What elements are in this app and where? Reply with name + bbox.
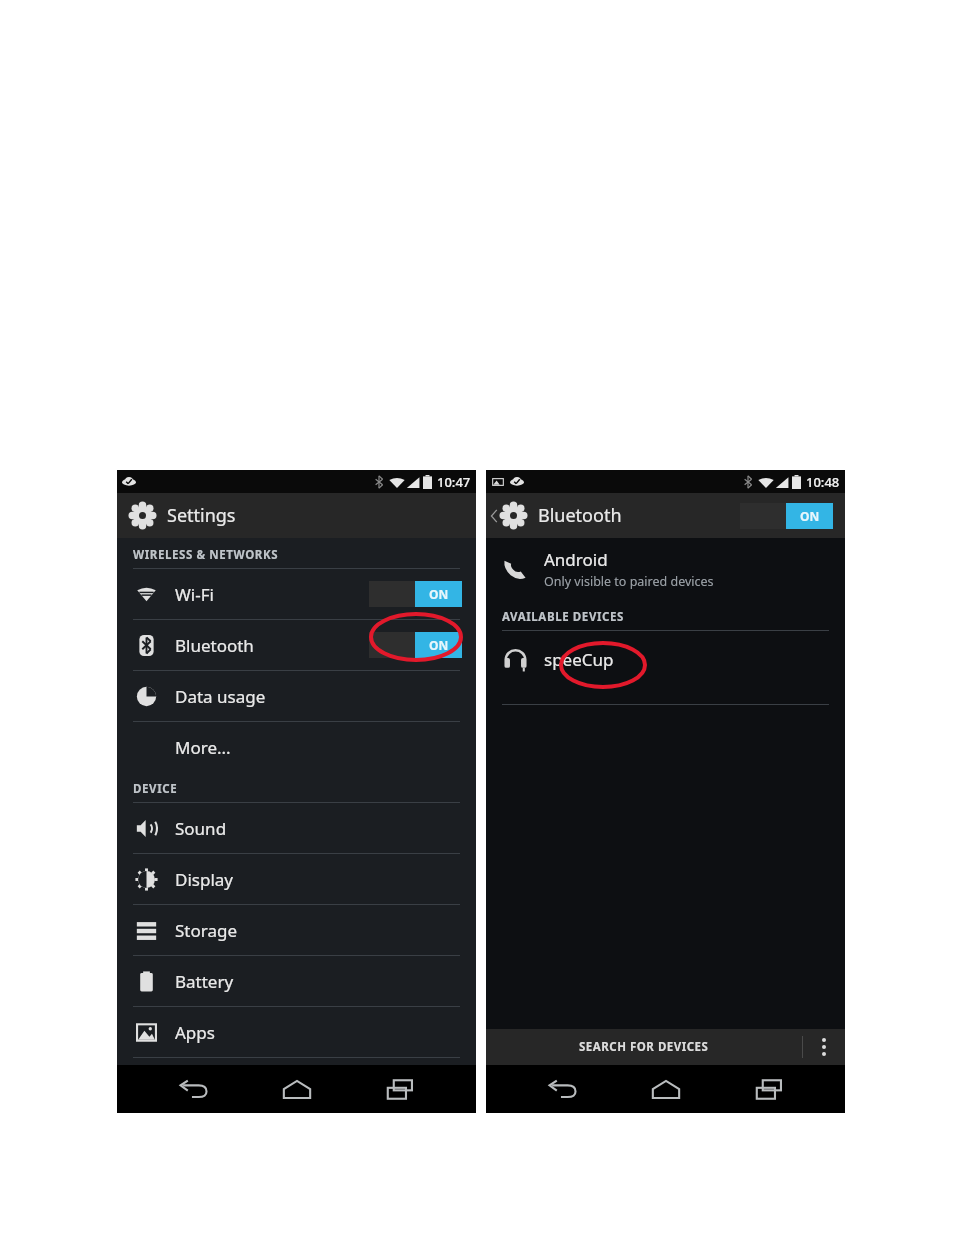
staticText: Sound — [175, 817, 227, 840]
button[interactable]: More options — [803, 1029, 845, 1065]
staticText: Wi-Fi — [175, 583, 214, 606]
button[interactable]: speeCup — [486, 631, 845, 687]
staticText: DEVICE — [133, 781, 178, 797]
staticText: Display — [175, 868, 233, 891]
button[interactable]: Sound — [117, 803, 476, 853]
staticText: More... — [175, 736, 231, 759]
staticText: AVAILABLE DEVICES — [502, 609, 625, 625]
button[interactable]: Wi-Fi — [117, 569, 476, 619]
button[interactable]: Home — [638, 1065, 694, 1113]
staticText: Storage — [175, 919, 238, 942]
button[interactable]: Settings — [117, 493, 476, 538]
button[interactable]: Back — [534, 1065, 590, 1113]
button[interactable]: Recent apps — [741, 1065, 797, 1113]
button[interactable]: Recent apps — [372, 1065, 428, 1113]
staticText: ON — [800, 508, 820, 524]
button[interactable]: Android — [486, 538, 845, 600]
staticText: speeCup — [544, 648, 614, 671]
button[interactable]: Apps — [117, 1007, 476, 1057]
button[interactable]: Battery — [117, 956, 476, 1006]
staticText: Bluetooth — [175, 634, 254, 657]
staticText: Android — [544, 548, 608, 571]
staticText: WIRELESS & NETWORKS — [133, 547, 279, 563]
button[interactable]: Bluetooth — [117, 620, 476, 670]
staticText: Battery — [175, 970, 234, 993]
staticText: ON — [429, 586, 449, 602]
staticText: Apps — [175, 1021, 215, 1044]
staticText: SEARCH FOR DEVICES — [579, 1039, 709, 1055]
staticText: Data usage — [175, 685, 266, 708]
button[interactable]: Storage — [117, 905, 476, 955]
button[interactable]: Home — [269, 1065, 325, 1113]
staticText: 10:48 — [806, 473, 840, 491]
staticText: ON — [429, 637, 449, 653]
button[interactable]: ON — [740, 503, 833, 529]
button[interactable]: ON — [369, 632, 462, 658]
staticText: Bluetooth — [538, 503, 622, 528]
button[interactable]: ON — [369, 581, 462, 607]
button[interactable]: SEARCH FOR DEVICES — [486, 1029, 802, 1065]
button[interactable]: Data usage — [117, 671, 476, 721]
staticText: Only visible to paired devices — [544, 573, 714, 590]
staticText: 10:47 — [437, 473, 471, 491]
button[interactable]: Up — [486, 503, 622, 528]
button[interactable]: Back — [165, 1065, 221, 1113]
button[interactable]: Display — [117, 854, 476, 904]
staticText: Settings — [167, 503, 236, 528]
button[interactable]: More... — [117, 722, 476, 772]
